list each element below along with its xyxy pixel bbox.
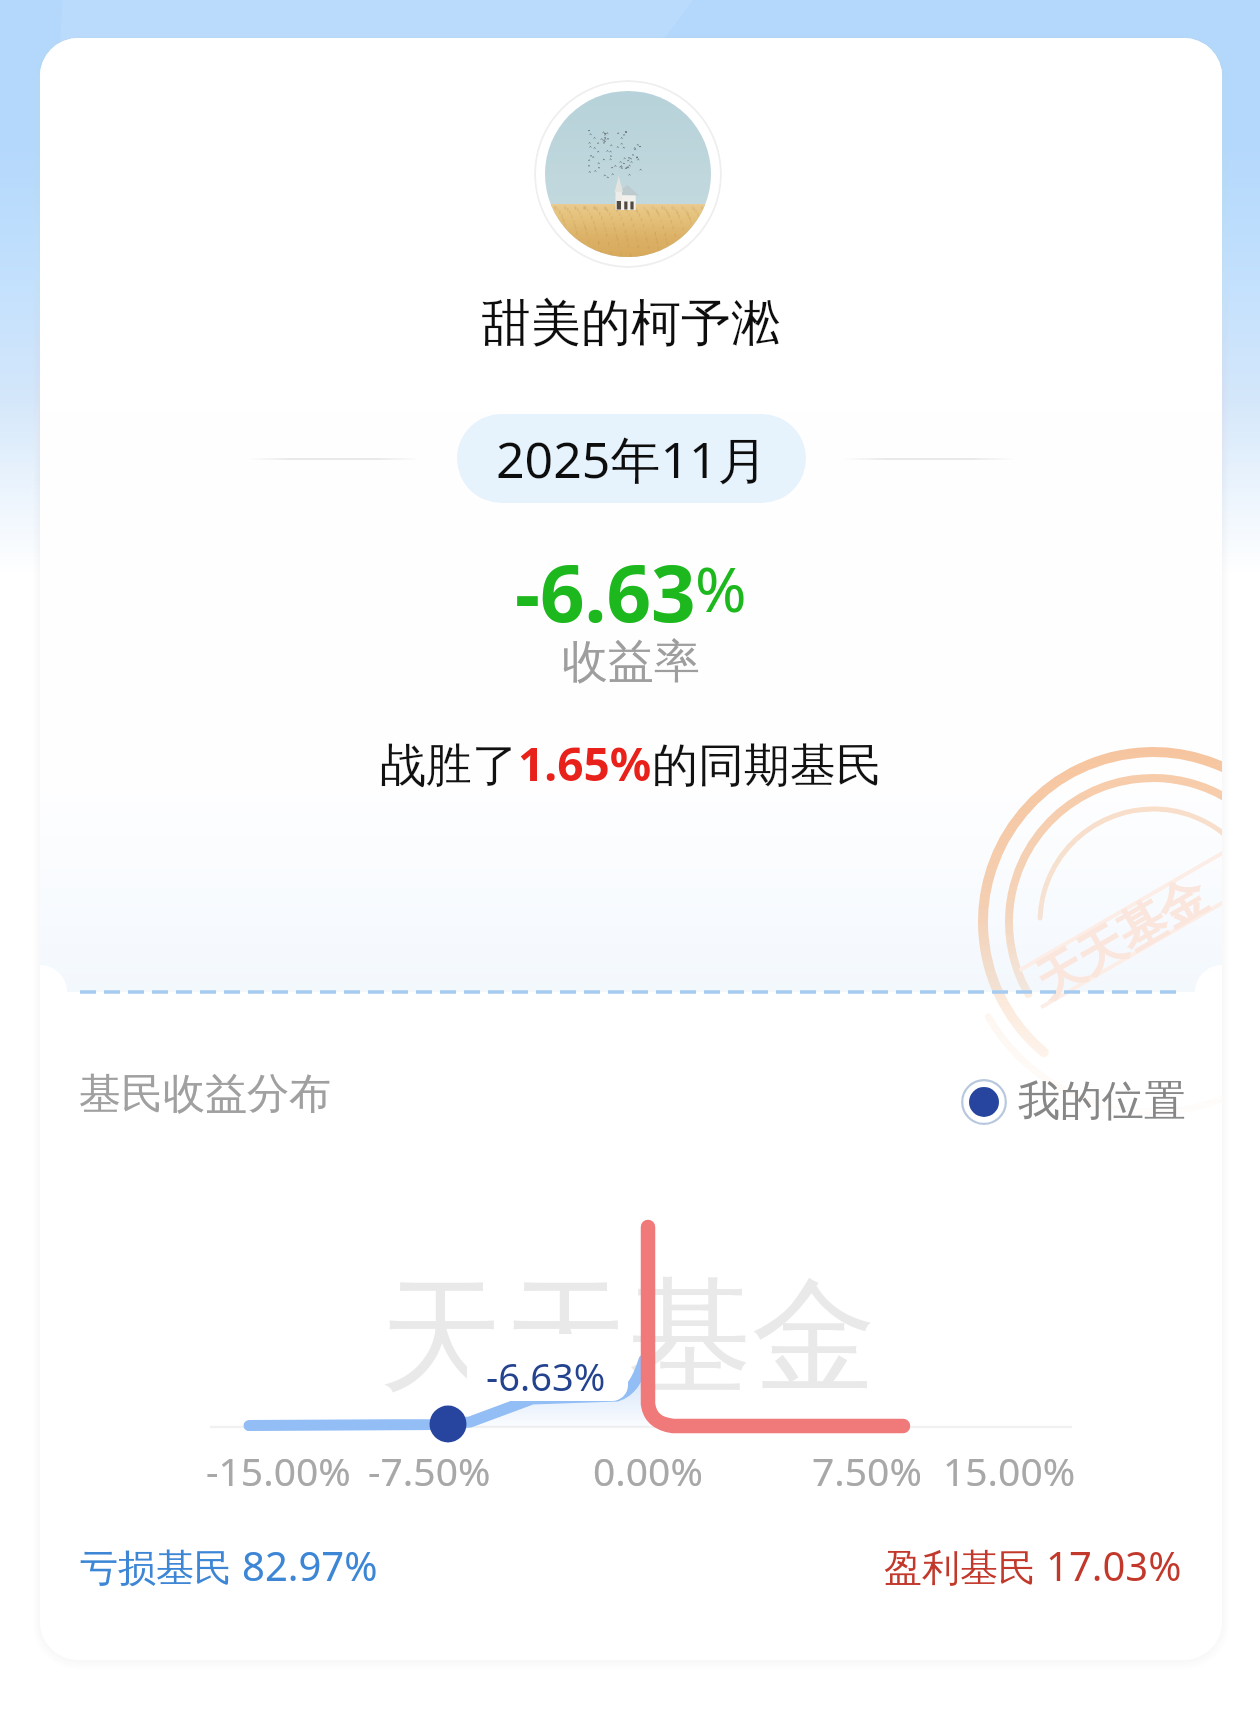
staticText: 1.65% <box>518 732 652 795</box>
staticText: 我的位置 <box>1018 1075 1186 1128</box>
staticText: 17.03% <box>1046 1538 1182 1592</box>
staticText: 天天基金 <box>380 1260 876 1416</box>
staticText: 基民收益分布 <box>79 1068 331 1121</box>
staticText: -6.63 <box>515 539 696 645</box>
button[interactable]: 我的位置 <box>961 1075 1186 1128</box>
staticText: 盈利基民 <box>884 1540 1046 1592</box>
button[interactable]: 亏损基民 <box>80 1538 378 1592</box>
staticText: 0.00% <box>593 1444 703 1497</box>
staticText: -7.50% <box>368 1444 491 1497</box>
button[interactable]: 2025年11月 <box>457 414 806 503</box>
button[interactable]: 用户头像 <box>534 80 722 268</box>
staticText: % <box>695 546 747 630</box>
staticText: -15.00% <box>206 1444 351 1497</box>
staticText: 7.50% <box>812 1444 922 1497</box>
staticText: 天天基金 <box>1025 866 1218 1011</box>
staticText: 亏损基民 <box>80 1540 242 1592</box>
staticText: 15.00% <box>943 1444 1076 1497</box>
staticText: 82.97% <box>242 1538 378 1592</box>
button[interactable]: 盈利基民 <box>884 1538 1182 1592</box>
staticText: -6.63% <box>486 1350 606 1402</box>
staticText: 战胜了 <box>380 737 518 795</box>
staticText: 的同期基民 <box>652 737 882 795</box>
staticText: 收益率 <box>562 633 700 691</box>
staticText: 甜美的柯予淞 <box>481 292 781 355</box>
button[interactable]: 甜美的柯予淞 <box>473 290 789 357</box>
staticText: 2025年11月 <box>496 425 768 493</box>
